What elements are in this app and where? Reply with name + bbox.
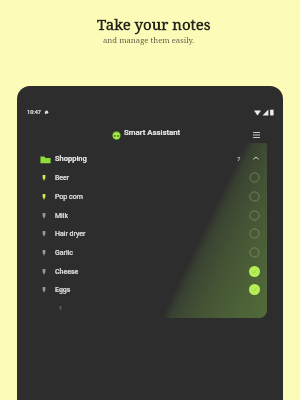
button[interactable]: Check Milk [246,208,262,223]
button[interactable]: Shopping [17,150,283,167]
staticText: Shopping [55,154,87,163]
button[interactable]: Uncheck Cheese [246,264,262,279]
staticText: Eggs [55,286,71,294]
staticText: Cheese [55,268,79,276]
button[interactable]: Check Garlic [246,245,262,260]
staticText: Milk [55,212,69,220]
staticText: 10:47 [27,109,41,115]
button[interactable]: Check Hair dryer [246,226,262,241]
button[interactable]: Garlic [17,245,283,260]
button[interactable]: Uncheck Eggs [246,282,262,297]
staticText: 7 [237,155,241,162]
button[interactable]: Pop corn [17,189,283,204]
staticText: Garlic [55,249,74,257]
staticText: Hair dryer [55,230,86,238]
staticText: and manage them easily. [103,35,195,46]
staticText: Smart Assistant [124,128,181,137]
staticText: Beer [55,174,70,182]
staticText: Pop corn [55,193,83,201]
button[interactable]: Cheese [17,264,283,279]
button[interactable]: Check Beer [246,170,262,185]
button[interactable]: Beer [17,170,283,185]
button[interactable]: Eggs [17,282,283,297]
staticText: Take your notes [97,14,211,34]
button[interactable]: Milk [17,208,283,223]
button[interactable]: Open menu [248,126,265,143]
button[interactable]: Check Pop corn [246,189,262,204]
button[interactable]: Hair dryer [17,226,283,241]
